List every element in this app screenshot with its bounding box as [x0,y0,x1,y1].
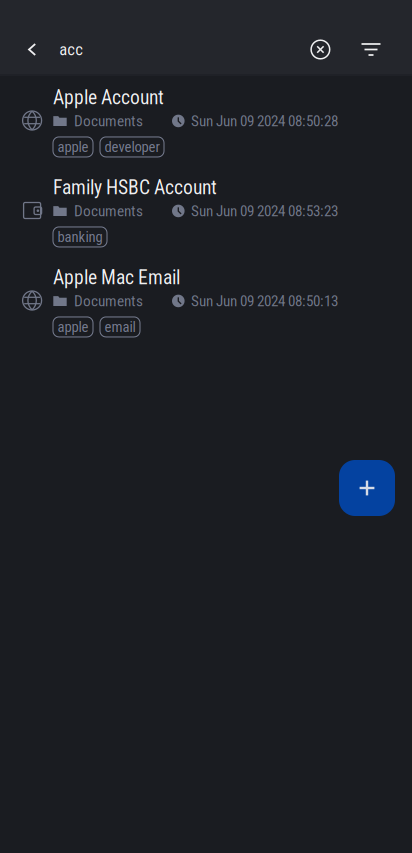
staticText: acc [59,40,83,59]
staticText: apple [57,318,88,335]
button[interactable]: Clear search [299,32,340,67]
staticText: developer [104,138,159,155]
staticText: Documents [74,202,143,220]
staticText: Sun Jun 09 2024 08:50:13 [191,292,338,310]
staticText: Documents [74,292,143,310]
button[interactable]: Filter [350,33,392,66]
staticText: banking [57,228,102,245]
staticText: Documents [74,112,143,130]
staticText: Sun Jun 09 2024 08:50:28 [191,112,338,130]
button[interactable]: Apple Account [0,76,412,166]
staticText: Family HSBC Account [53,176,217,199]
staticText: Apple Mac Email [53,266,180,289]
button[interactable]: Add entry [339,460,395,516]
button[interactable]: Back [0,32,59,67]
staticText: email [104,318,135,335]
staticText: apple [57,138,88,155]
button[interactable]: Family HSBC Account [0,166,412,256]
staticText: Sun Jun 09 2024 08:53:23 [191,202,338,220]
button[interactable]: Apple Mac Email [0,256,412,346]
staticText: Apple Account [53,86,164,109]
